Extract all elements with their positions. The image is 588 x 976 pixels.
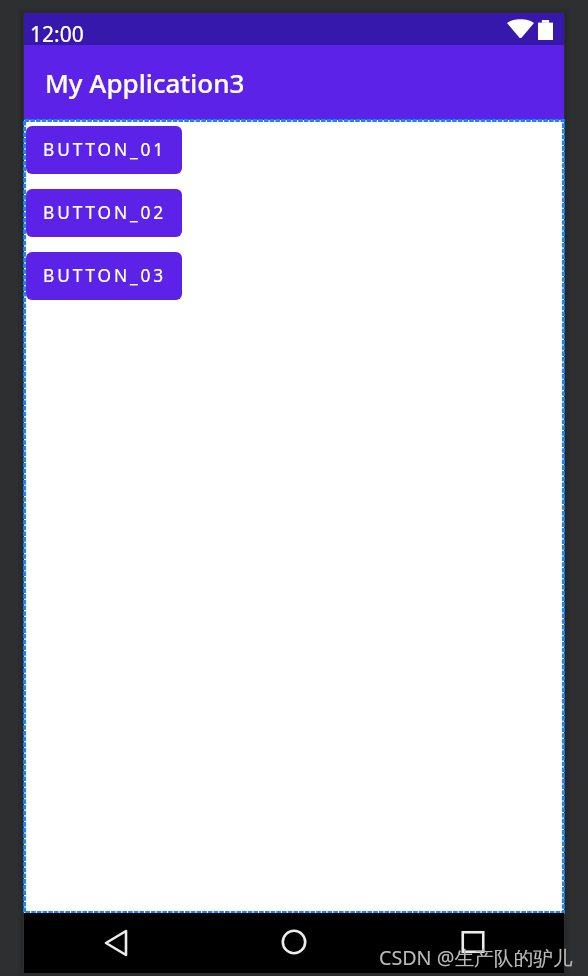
staticText: BUTTON_03 bbox=[43, 264, 166, 288]
staticText: BUTTON_01 bbox=[43, 138, 166, 162]
staticText: BUTTON_02 bbox=[43, 201, 166, 225]
button[interactable]: Back bbox=[98, 925, 134, 961]
staticText: 12:00 bbox=[30, 20, 84, 49]
staticText: CSDN @生产队的驴儿 bbox=[379, 944, 573, 971]
button[interactable]: BUTTON_03 bbox=[26, 252, 182, 300]
staticText: My Application3 bbox=[45, 65, 245, 100]
button[interactable]: Recents bbox=[455, 924, 491, 960]
button[interactable]: BUTTON_02 bbox=[26, 189, 182, 237]
button[interactable]: Home bbox=[276, 924, 312, 960]
button[interactable]: BUTTON_01 bbox=[26, 126, 182, 174]
